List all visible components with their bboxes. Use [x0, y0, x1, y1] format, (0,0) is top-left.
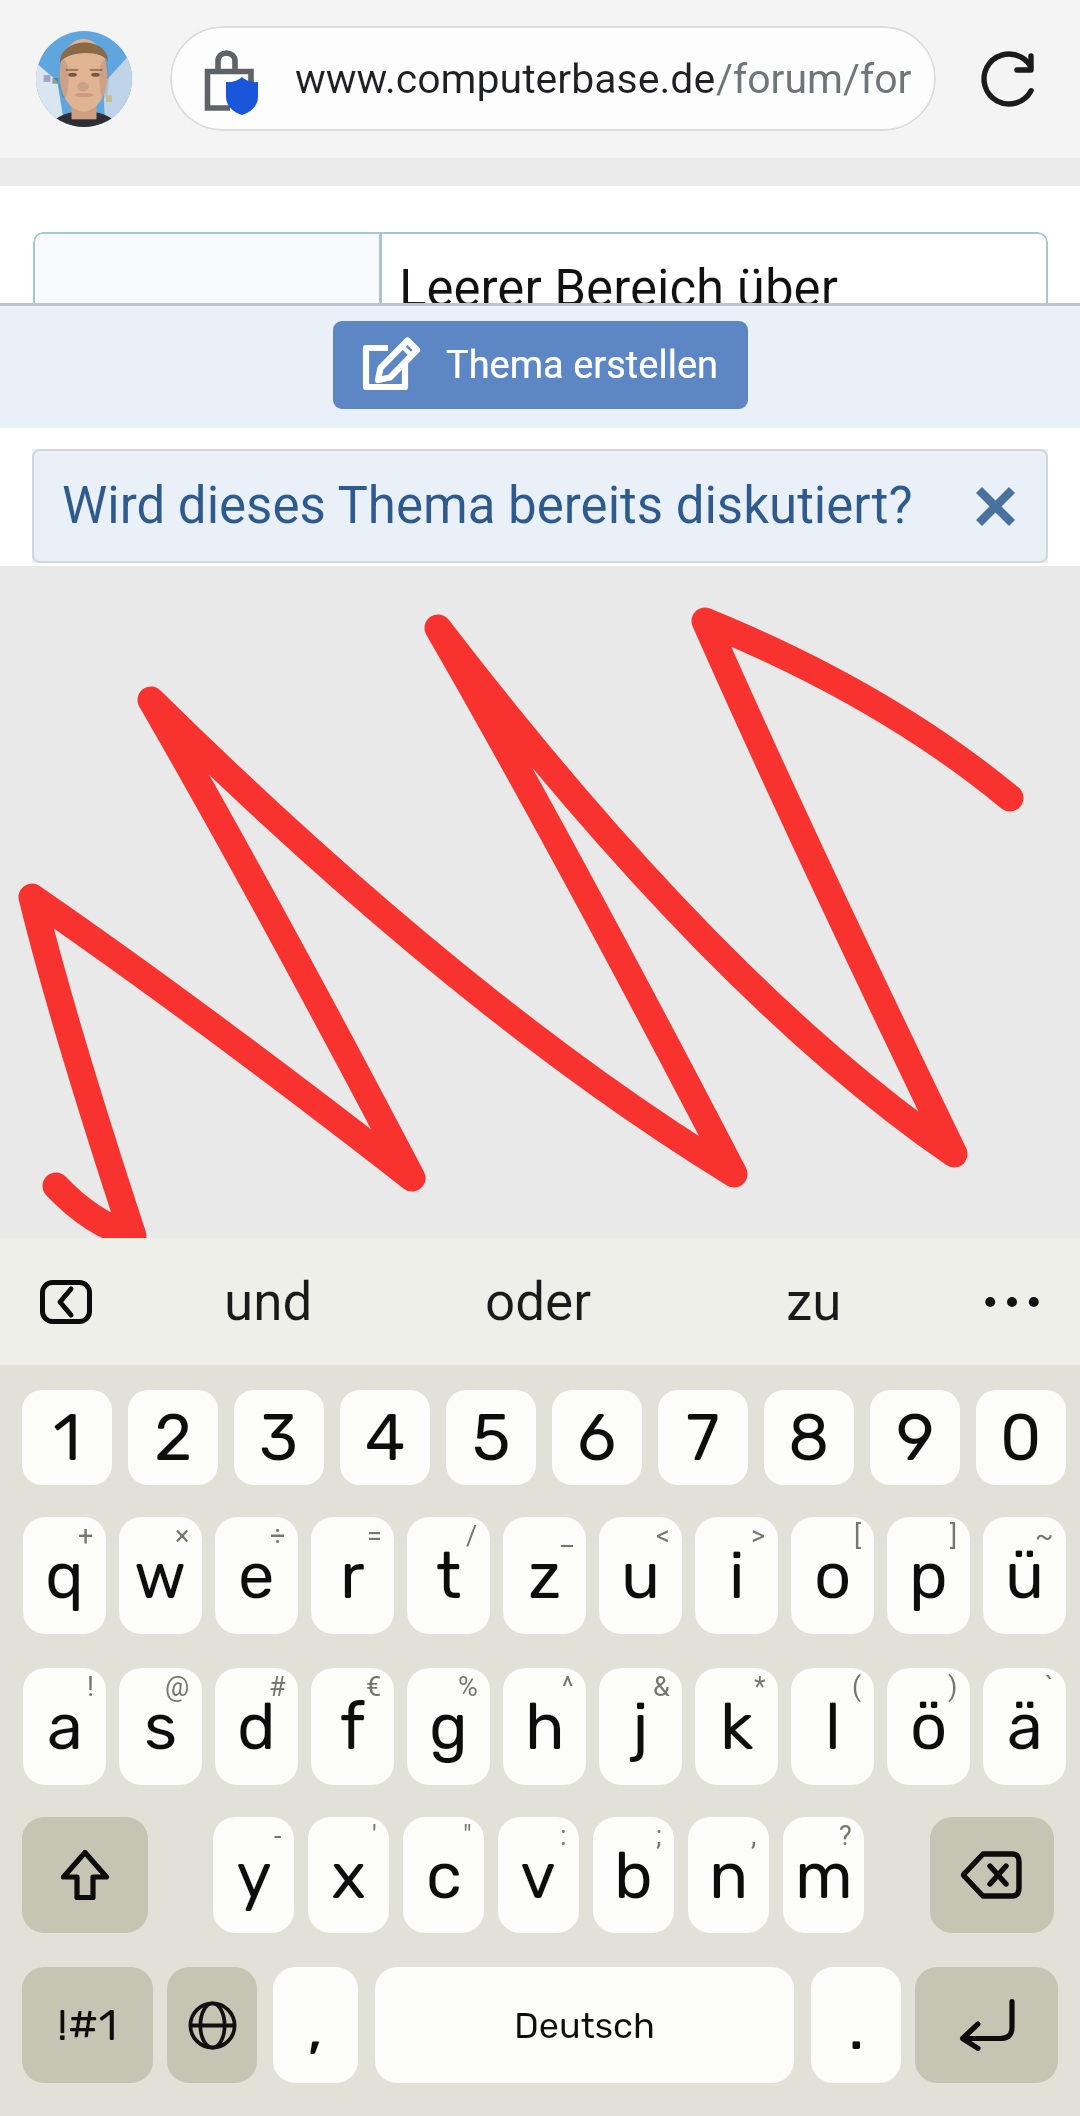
button[interactable]: 5: [446, 1390, 536, 1485]
button[interactable]: 7: [658, 1390, 748, 1485]
button[interactable]: 8: [764, 1390, 854, 1485]
staticText: p: [909, 1537, 948, 1614]
button[interactable]: Enter: [915, 1967, 1058, 2083]
button[interactable]: ?: [783, 1817, 864, 1933]
button[interactable]: @: [119, 1668, 202, 1785]
staticText: -: [274, 1820, 282, 1852]
button[interactable]: -: [213, 1817, 294, 1933]
button[interactable]: und: [200, 1238, 336, 1365]
button[interactable]: ,: [688, 1817, 769, 1933]
button[interactable]: oder: [470, 1238, 606, 1365]
staticText: q: [45, 1537, 84, 1614]
button[interactable]: 1: [22, 1390, 112, 1485]
staticText: 9: [896, 1399, 935, 1476]
button[interactable]: zu: [746, 1238, 882, 1365]
button[interactable]: 2: [128, 1390, 218, 1485]
staticText: d: [237, 1688, 276, 1765]
button[interactable]: !#1: [22, 1967, 153, 2083]
staticText: *: [754, 1671, 766, 1703]
button[interactable]: Backspace: [930, 1817, 1054, 1933]
button[interactable]: Shift: [22, 1817, 148, 1933]
button[interactable]: 9: [870, 1390, 960, 1485]
staticText: 4: [365, 1399, 406, 1476]
button[interactable]: Thema erstellen: [333, 321, 748, 409]
button[interactable]: ]: [887, 1517, 970, 1634]
staticText: oder: [485, 1271, 592, 1333]
staticText: /: [466, 1520, 478, 1552]
button[interactable]: =: [311, 1517, 394, 1634]
staticText: +: [78, 1520, 94, 1552]
button[interactable]: >: [695, 1517, 778, 1634]
staticText: g: [429, 1688, 468, 1765]
button[interactable]: 6: [552, 1390, 642, 1485]
button[interactable]: ÷: [215, 1517, 298, 1634]
staticText: =: [367, 1520, 382, 1552]
button[interactable]: (: [791, 1668, 874, 1785]
button[interactable]: Previous suggestions: [28, 1264, 104, 1340]
button[interactable]: [: [791, 1517, 874, 1634]
button[interactable]: _: [503, 1517, 586, 1634]
staticText: ,: [307, 1988, 324, 2065]
staticText: x: [331, 1837, 367, 1914]
button[interactable]: `: [983, 1668, 1066, 1785]
staticText: ö: [910, 1688, 948, 1765]
button[interactable]: ': [308, 1817, 389, 1933]
staticText: <: [656, 1520, 670, 1552]
button[interactable]: 4: [340, 1390, 430, 1485]
button[interactable]: Switch language: [167, 1967, 257, 2083]
staticText: #: [269, 1671, 286, 1703]
button[interactable]: Close: [957, 468, 1033, 544]
staticText: k: [720, 1688, 754, 1765]
staticText: Wird dieses Thema bereits diskutiert?: [62, 476, 913, 536]
staticText: Deutsch: [514, 2004, 655, 2047]
button[interactable]: ×: [119, 1517, 202, 1634]
button[interactable]: ): [887, 1668, 970, 1785]
button[interactable]: Profile: [36, 31, 132, 127]
button[interactable]: 3: [234, 1390, 324, 1485]
staticText: a: [47, 1688, 83, 1765]
staticText: c: [426, 1837, 462, 1914]
button[interactable]: ,: [273, 1967, 358, 2083]
button[interactable]: .: [811, 1967, 901, 2083]
button[interactable]: €: [311, 1668, 394, 1785]
staticText: ): [948, 1671, 958, 1703]
button[interactable]: ~: [983, 1517, 1066, 1634]
button[interactable]: /: [407, 1517, 490, 1634]
staticText: &: [653, 1671, 670, 1703]
staticText: !: [87, 1671, 94, 1703]
button[interactable]: %: [407, 1668, 490, 1785]
button[interactable]: &: [599, 1668, 682, 1785]
staticText: w: [134, 1537, 187, 1614]
staticText: !#1: [57, 1999, 118, 2051]
button[interactable]: More options: [974, 1264, 1050, 1340]
staticText: und: [224, 1271, 313, 1333]
staticText: ?: [839, 1820, 852, 1852]
button[interactable]: *: [695, 1668, 778, 1785]
button[interactable]: <: [599, 1517, 682, 1634]
button[interactable]: ": [403, 1817, 484, 1933]
staticText: 1: [53, 1399, 81, 1476]
staticText: j: [632, 1688, 649, 1765]
button[interactable]: ;: [593, 1817, 674, 1933]
staticText: 6: [577, 1399, 617, 1476]
staticText: f: [340, 1688, 366, 1765]
button[interactable]: #: [215, 1668, 298, 1785]
staticText: b: [614, 1837, 653, 1914]
button[interactable]: 0: [976, 1390, 1066, 1485]
staticText: ": [463, 1820, 472, 1852]
button[interactable]: www.computerbase.de: [170, 26, 936, 131]
staticText: 3: [259, 1399, 299, 1476]
button[interactable]: Deutsch: [375, 1967, 794, 2083]
staticText: ;: [656, 1820, 662, 1852]
button[interactable]: Reload: [963, 31, 1059, 127]
button[interactable]: +: [23, 1517, 106, 1634]
button[interactable]: !: [23, 1668, 106, 1785]
staticText: 8: [788, 1399, 830, 1476]
button[interactable]: :: [498, 1817, 579, 1933]
button[interactable]: ^: [503, 1668, 586, 1785]
staticText: 2: [154, 1399, 193, 1476]
staticText: www.computerbase.de: [295, 55, 716, 103]
staticText: u: [621, 1537, 661, 1614]
staticText: _: [561, 1520, 574, 1552]
button[interactable]: Wird dieses Thema bereits diskutiert?: [32, 449, 1048, 563]
